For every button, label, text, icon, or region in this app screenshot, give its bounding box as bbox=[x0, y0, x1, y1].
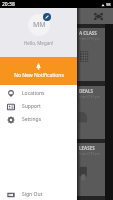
staticText: 20:38 bbox=[2, 1, 15, 8]
staticText: From £199 pm bbox=[79, 152, 100, 156]
staticText: Support bbox=[22, 103, 41, 110]
staticText: A CLASS bbox=[79, 30, 97, 36]
staticText: Sign Out bbox=[22, 191, 43, 198]
button[interactable]: MM bbox=[28, 14, 50, 36]
staticText: From £199 pm bbox=[79, 95, 100, 99]
staticText: 98 bbox=[106, 2, 111, 7]
button[interactable]: Locations bbox=[0, 87, 77, 100]
button[interactable]: Edit profile bbox=[43, 13, 51, 21]
staticText: MM bbox=[33, 20, 46, 30]
other: Brand logo bbox=[93, 11, 104, 22]
staticText: Locations bbox=[22, 90, 45, 97]
staticText: Hello, Megan! bbox=[24, 40, 54, 46]
button[interactable]: No New Notifications bbox=[0, 57, 77, 85]
staticText: LEASES bbox=[79, 145, 95, 151]
button[interactable]: DEALS bbox=[2, 86, 105, 139]
staticText: No New Notifications bbox=[14, 72, 64, 79]
staticText: From £199 pm bbox=[79, 37, 100, 41]
button[interactable]: Sign Out bbox=[0, 188, 77, 200]
button[interactable]: LEASES bbox=[2, 143, 105, 196]
staticText: Settings bbox=[22, 116, 42, 123]
staticText: DEALS bbox=[79, 88, 93, 94]
button[interactable]: Settings bbox=[0, 113, 77, 126]
button[interactable]: A CLASS bbox=[2, 28, 105, 81]
button[interactable]: Support bbox=[0, 100, 77, 113]
